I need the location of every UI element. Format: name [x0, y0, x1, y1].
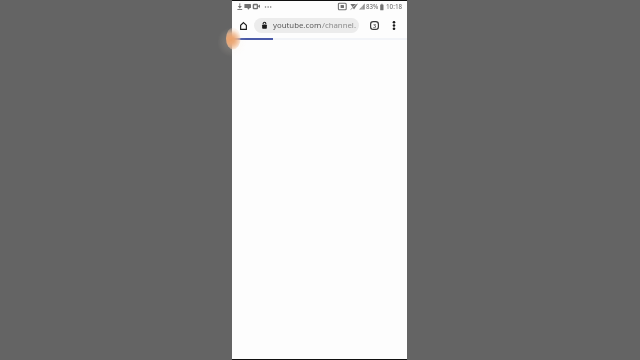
staticText: 3 — [373, 22, 377, 30]
button[interactable]: More options — [384, 16, 403, 35]
button[interactable]: Switch tabs — [365, 16, 384, 35]
staticText: youtube.com — [273, 20, 322, 31]
staticText: 10:18 — [386, 2, 403, 11]
button[interactable]: Home — [234, 16, 253, 35]
button[interactable]: youtube.com — [254, 18, 359, 33]
staticText: 83% — [366, 2, 379, 10]
staticText: /channel. — [322, 20, 356, 31]
